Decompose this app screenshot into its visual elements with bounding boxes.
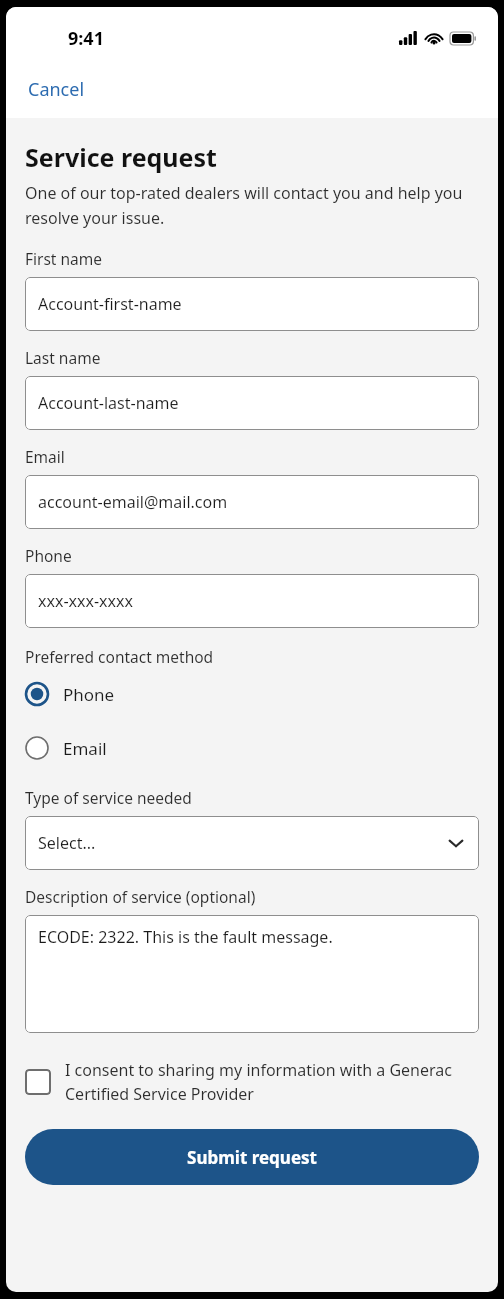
staticText: Submit request (187, 1146, 317, 1169)
staticText: Select... (38, 832, 96, 854)
staticText: 9:41 (68, 26, 104, 51)
staticText: I consent to sharing my information with… (65, 1059, 479, 1105)
button[interactable]: Submit request (25, 1129, 479, 1185)
button[interactable]: I consent to sharing my information with… (25, 1059, 479, 1105)
button[interactable]: Select... (25, 816, 479, 870)
button[interactable]: Email (25, 725, 479, 771)
staticText: ECODE: 2322. This is the fault message. (38, 926, 333, 948)
staticText: account-email@mail.com (38, 491, 228, 513)
staticText: Cancel (28, 77, 85, 102)
button[interactable]: Account-first-name (25, 277, 479, 331)
button[interactable]: xxx-xxx-xxxx (25, 574, 479, 628)
staticText: First name (25, 248, 103, 269)
staticText: Service request (25, 140, 217, 174)
staticText: Description of service (optional) (25, 886, 256, 907)
staticText: Phone (63, 683, 115, 706)
staticText: One of our top-rated dealers will contac… (25, 182, 479, 228)
button[interactable]: Phone (25, 671, 479, 717)
button[interactable]: Account-last-name (25, 376, 479, 430)
staticText: Email (25, 446, 65, 467)
staticText: Preferred contact method (25, 646, 214, 667)
button[interactable]: account-email@mail.com (25, 475, 479, 529)
staticText: xxx-xxx-xxxx (38, 590, 133, 612)
staticText: Email (63, 737, 107, 760)
button[interactable]: ECODE: 2322. This is the fault message. (25, 915, 479, 1033)
staticText: Type of service needed (25, 787, 192, 808)
button[interactable]: Cancel (18, 69, 95, 110)
staticText: Account-first-name (38, 293, 182, 315)
staticText: Last name (25, 347, 101, 368)
staticText: Account-last-name (38, 392, 179, 414)
staticText: Phone (25, 545, 72, 566)
